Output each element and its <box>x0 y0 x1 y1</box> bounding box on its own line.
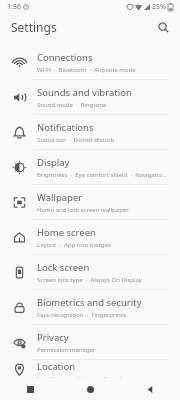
staticText: Brightness · Eye comfort shield · Naviga… <box>37 171 170 179</box>
button[interactable]: Home screen <box>0 220 180 254</box>
button[interactable]: Lock screen <box>0 255 180 289</box>
staticText: Face recognition · Fingerprints <box>37 311 126 319</box>
staticText: Connections <box>37 51 93 64</box>
button[interactable]: Search <box>153 17 173 37</box>
button[interactable]: Location <box>0 360 180 378</box>
button[interactable]: Wallpaper <box>0 185 180 219</box>
button[interactable]: Sounds and vibration <box>0 80 180 114</box>
staticText: Location permissions · Location requests <box>37 375 155 378</box>
staticText: Privacy <box>37 331 69 344</box>
staticText: Wi-Fi · Bluetooth · Airplane mode <box>37 66 136 74</box>
button[interactable]: Biometrics and security <box>0 290 180 324</box>
button[interactable]: Privacy <box>0 325 180 359</box>
button[interactable]: Notifications <box>0 115 180 149</box>
staticText: Display <box>37 156 70 169</box>
staticText: Notifications <box>37 121 94 134</box>
staticText: Sounds and vibration <box>37 86 132 99</box>
staticText: Settings <box>11 19 57 35</box>
staticText: 1:56 <box>7 2 21 12</box>
staticText: Location <box>37 360 76 373</box>
button[interactable]: Home <box>60 378 120 400</box>
staticText: Status bar · Do not disturb <box>37 136 115 144</box>
staticText: Permission manager <box>37 346 96 354</box>
staticText: Home and lock screen wallpaper <box>37 206 129 214</box>
button[interactable]: Display <box>0 150 180 184</box>
staticText: Layout · App icon badges <box>37 241 111 249</box>
staticText: Lock screen <box>37 261 90 274</box>
staticText: Home screen <box>37 226 96 239</box>
button[interactable]: Connections <box>0 45 180 79</box>
button[interactable]: Recents <box>0 378 60 400</box>
staticText: Sound mode · Ringtone <box>37 101 107 109</box>
button[interactable]: Back <box>120 378 180 400</box>
staticText: 25% <box>152 2 166 12</box>
staticText: Screen lock type · Always On Display <box>37 276 142 284</box>
staticText: Wallpaper <box>37 191 83 204</box>
staticText: Biometrics and security <box>37 296 142 309</box>
